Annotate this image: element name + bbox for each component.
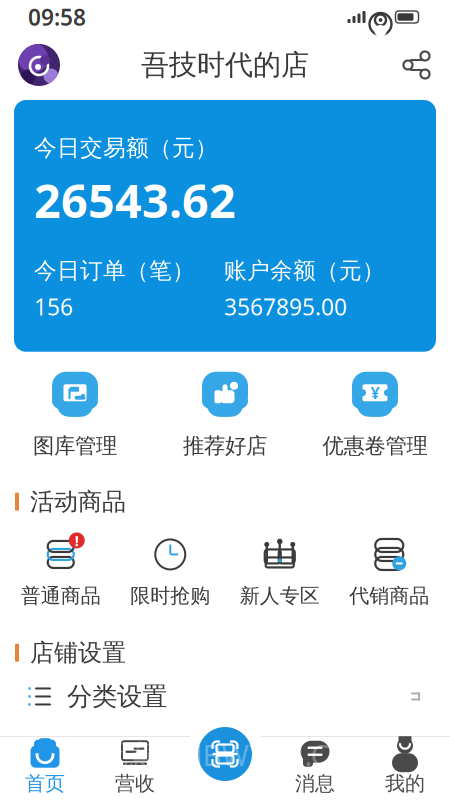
staticText: 账户余额（元）: [224, 257, 385, 285]
staticText: 09:58: [28, 2, 86, 32]
staticText: 店铺设置: [30, 638, 126, 667]
button[interactable]: 新人专区: [225, 530, 334, 612]
button[interactable]: 图库管理: [0, 366, 150, 463]
button[interactable]: 店铺头像: [0, 36, 60, 94]
staticText: 活动商品: [30, 487, 126, 516]
button[interactable]: 分类设置: [0, 673, 450, 719]
staticText: 吾技时代的店: [141, 48, 309, 82]
button[interactable]: 首页: [0, 736, 90, 800]
staticText: 3567895.00: [224, 292, 347, 322]
staticText: 玩意 · NBWYXH.CN: [98, 735, 351, 774]
staticText: 26543.62: [34, 169, 236, 231]
button[interactable]: 我的: [360, 736, 450, 800]
staticText: 今日订单（笔）: [34, 257, 195, 285]
button[interactable]: 分享: [402, 42, 450, 88]
button[interactable]: !: [6, 530, 115, 612]
staticText: 代销商品: [349, 583, 429, 608]
staticText: 营收: [115, 771, 155, 796]
staticText: 推荐好店: [183, 433, 267, 459]
button[interactable]: 扫一扫: [194, 723, 256, 785]
button[interactable]: 限时抢购: [115, 530, 225, 612]
staticText: 今日交易额（元）: [34, 134, 218, 162]
staticText: 消息: [295, 771, 335, 796]
button[interactable]: 推荐好店: [150, 366, 300, 463]
staticText: 新人专区: [240, 583, 320, 608]
staticText: 分类设置: [67, 681, 167, 712]
staticText: 限时抢购: [130, 583, 210, 608]
staticText: !: [75, 531, 79, 550]
staticText: 156: [34, 292, 73, 322]
staticText: ¥: [370, 382, 379, 403]
staticText: 我的: [385, 771, 425, 796]
button[interactable]: 营收: [90, 736, 180, 800]
button[interactable]: 代销商品: [334, 530, 444, 612]
staticText: 首页: [25, 771, 65, 796]
staticText: 图库管理: [33, 433, 117, 459]
button[interactable]: ¥: [300, 366, 450, 463]
button[interactable]: 消息: [270, 736, 360, 800]
staticText: 普通商品: [21, 583, 101, 608]
staticText: 优惠卷管理: [322, 433, 427, 459]
